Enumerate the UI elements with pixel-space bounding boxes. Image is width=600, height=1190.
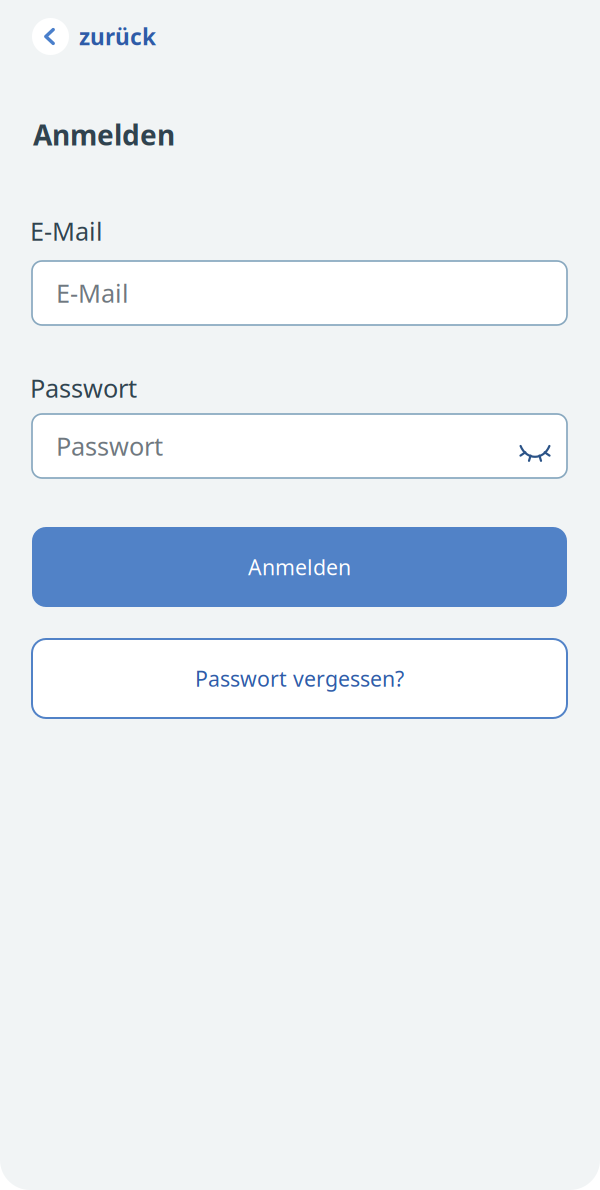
staticText: Anmelden (33, 116, 175, 153)
button[interactable]: Passwort vergessen? (32, 639, 567, 718)
button[interactable]: Passwort anzeigen (519, 427, 551, 465)
staticText: E-Mail (56, 276, 129, 310)
staticText: Passwort vergessen? (195, 664, 404, 693)
staticText: Passwort (30, 371, 137, 405)
staticText: Passwort (56, 429, 163, 463)
staticText: E-Mail (30, 214, 103, 248)
staticText: zurück (79, 21, 156, 51)
button[interactable]: Anmelden (32, 527, 567, 607)
staticText: Anmelden (248, 553, 351, 581)
button[interactable]: zurück (32, 18, 156, 55)
